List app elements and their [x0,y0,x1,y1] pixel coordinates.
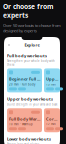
staticText: Strong legs and glutes [7,143,39,144]
staticText: Beginner Full Body [9,76,40,82]
staticText: Explore [24,42,39,48]
button[interactable]: Core Blast [44,108,60,132]
staticText: Lower body workouts [7,136,51,142]
staticText: Upper body workouts [7,96,53,102]
staticText: Strengthen your whole body with these [7,59,55,66]
staticText: designed by experts [3,28,37,33]
staticText: Full body workouts [7,53,47,58]
staticText: Upper Body [46,76,58,82]
staticText: 10 min · Warm up [9,123,33,126]
staticText: 20 min · Full body [9,83,35,86]
staticText: 12 min [46,123,56,126]
staticText: Core Blast [46,116,58,122]
staticText: 15 min [46,83,56,86]
button[interactable]: Upper Body [44,68,60,92]
staticText: Build strength in your arms and back [7,103,57,106]
staticText: Or choose from [3,2,54,11]
staticText: experts [3,11,28,20]
button[interactable]: Full Body Warm Up [7,108,42,132]
staticText: Over 50 workouts to choose from [3,23,61,28]
staticText: Full Body Warm Up [9,116,40,122]
button[interactable]: Beginner Full Body [7,68,42,92]
button[interactable]: Back [7,43,11,47]
